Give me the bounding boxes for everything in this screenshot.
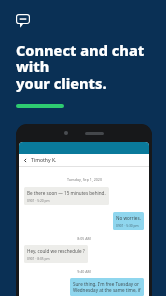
staticText: 0901 · 5:20 pm — [27, 198, 50, 202]
button[interactable]: No worries. — [113, 212, 144, 230]
staticText: Sure thing. I'm free Tuesday or Wednesda… — [73, 281, 141, 293]
staticText: Tuesday, Sep 1, 2020 — [67, 177, 102, 182]
other: Back — [23, 158, 28, 163]
staticText: 0901 · 5:30 pm — [116, 223, 139, 227]
staticText: 9:40 AM — [77, 269, 91, 274]
staticText: No worries. — [116, 215, 141, 221]
button[interactable]: Be there soon — 15 minutes behind. — [24, 187, 109, 205]
staticText: 0901 · 8:05 pm — [27, 256, 50, 260]
staticText: Connect and chat with your clients. — [16, 40, 156, 94]
button[interactable]: Sure thing. I'm free Tuesday or Wednesda… — [70, 278, 144, 296]
staticText: Be there soon — 15 minutes behind. — [27, 190, 106, 196]
staticText: Hey, could we reschedule ? — [27, 248, 85, 254]
button[interactable]: Chat — [16, 14, 30, 28]
staticText: 8:05 AM — [77, 236, 91, 241]
staticText: Timothy K. — [31, 157, 57, 164]
button[interactable]: Back — [19, 154, 149, 166]
button[interactable]: Hey, could we reschedule ? — [24, 245, 88, 263]
